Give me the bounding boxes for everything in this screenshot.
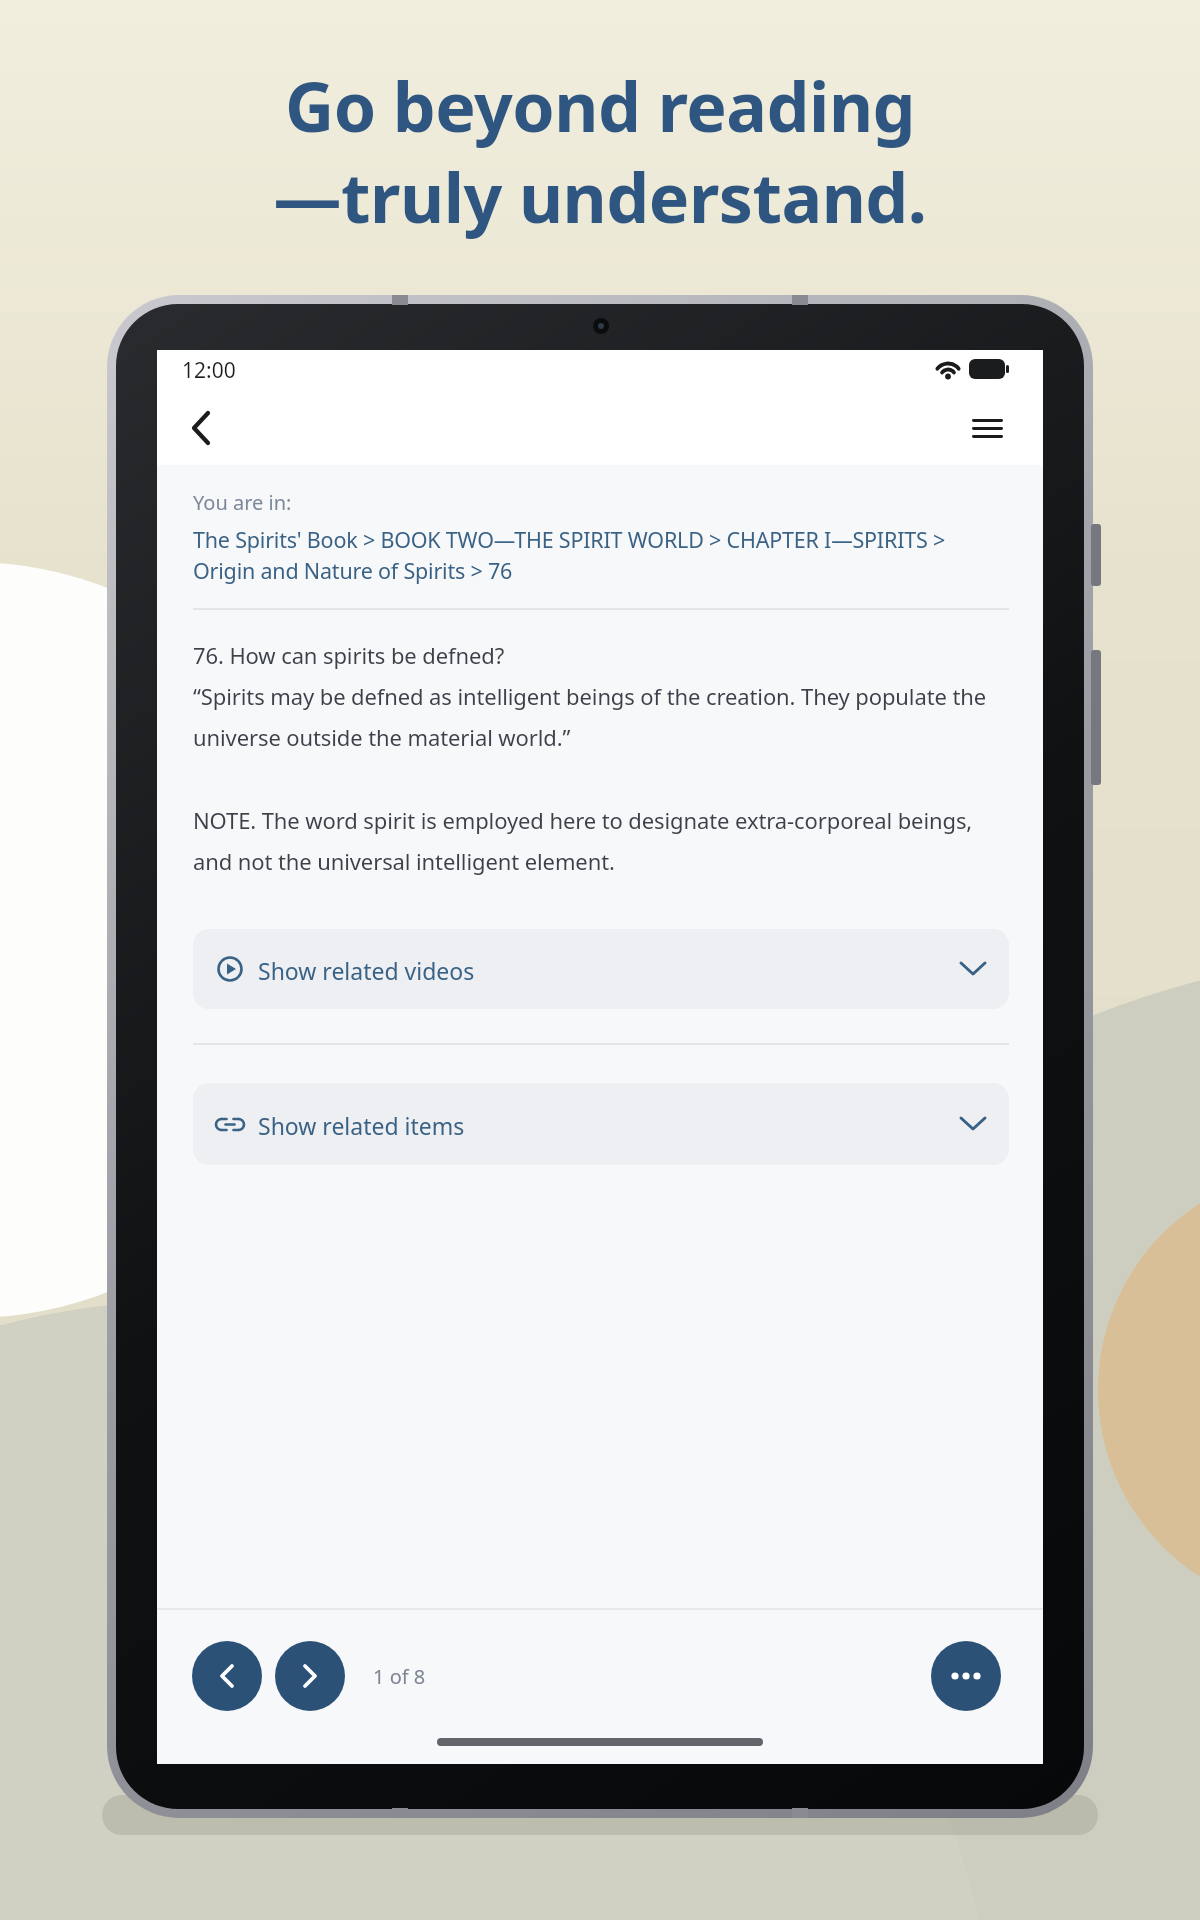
staticText: Go beyond reading —truly understand. (0, 59, 1200, 243)
button[interactable] (957, 397, 1019, 459)
staticText: universe outside the material world.” (193, 722, 571, 752)
button[interactable]: Show related videos (193, 929, 1009, 1009)
staticText: You are in: (193, 489, 292, 516)
staticText: The Spirits' Book > BOOK TWO—THE SPIRIT … (193, 525, 946, 554)
staticText: 76. How can spirits be defned? (193, 640, 505, 670)
staticText: Show related items (258, 1110, 465, 1141)
button[interactable] (931, 1641, 1001, 1711)
staticText: 1 of 8 (373, 1663, 426, 1690)
staticText: “Spirits may be defned as intelligent be… (193, 681, 987, 711)
staticText: 12:00 (182, 356, 236, 385)
staticText: and not the universal intelligent elemen… (193, 846, 615, 876)
button[interactable]: Show related items (193, 1083, 1009, 1165)
button[interactable] (177, 397, 225, 459)
staticText: NOTE. The word spirit is employed here t… (193, 805, 973, 835)
staticText: Origin and Nature of Spirits > 76 (193, 556, 513, 585)
button[interactable] (192, 1641, 262, 1711)
staticText: Show related videos (258, 955, 475, 986)
button[interactable] (275, 1641, 345, 1711)
